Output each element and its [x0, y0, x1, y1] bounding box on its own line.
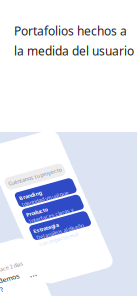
staticText: ¿Qué podemos aportar?	[5, 32, 52, 50]
staticText: la medida del usuario	[14, 43, 134, 59]
staticText: Portafolios hechos a	[14, 23, 127, 39]
staticText: Proyectos · Hace 2 días	[5, 22, 61, 29]
staticText: Branding	[12, 55, 35, 62]
